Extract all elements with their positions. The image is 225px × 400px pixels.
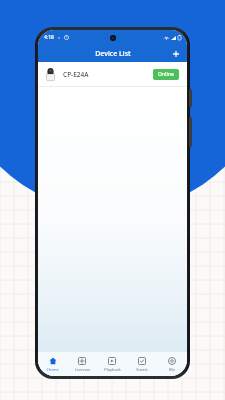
staticText: Me	[169, 367, 175, 372]
button[interactable]: Home	[38, 352, 67, 376]
button[interactable]: CP-E24A	[38, 62, 187, 87]
staticText: Smart	[136, 367, 148, 372]
staticText: CP-E24A	[63, 70, 89, 79]
button[interactable]: Online	[158, 71, 174, 78]
staticText: Home	[47, 367, 59, 372]
button[interactable]: Add device	[170, 48, 182, 60]
staticText: Device List	[95, 49, 131, 59]
staticText: Livevew	[75, 367, 90, 372]
button[interactable]: Me	[157, 352, 187, 376]
button[interactable]: Smart	[127, 352, 157, 376]
staticText: Online	[158, 71, 174, 78]
button[interactable]: Device List	[38, 45, 187, 62]
staticText: 4:18	[44, 34, 54, 41]
button[interactable]: Playback	[97, 352, 127, 376]
button[interactable]: Livevew	[67, 352, 97, 376]
staticText: Playback	[104, 367, 121, 372]
